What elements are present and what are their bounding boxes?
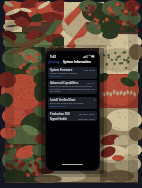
staticText: Install Verified Root xyxy=(50,98,76,102)
staticText: February 2020 xyxy=(78,117,95,120)
staticText: System Information xyxy=(63,60,91,64)
staticText: System Firmware xyxy=(50,68,73,72)
button[interactable]: Install Verified Root xyxy=(48,97,97,102)
button[interactable]: Device updated to stable on xyxy=(48,72,97,79)
staticText: Learn more xyxy=(50,75,62,78)
staticText: Settings xyxy=(50,60,61,64)
button[interactable]: Advanced Capabilities xyxy=(48,80,97,85)
button[interactable]: Production SDK xyxy=(48,111,97,116)
staticText: Production SDK xyxy=(50,112,70,116)
staticText: Advanced Capabilities xyxy=(50,81,79,85)
staticText: iOS 17 xyxy=(87,81,95,84)
staticText: Restart to apply xyxy=(50,105,66,108)
staticText: 9:41 xyxy=(50,55,57,59)
button[interactable]: Settings xyxy=(48,60,63,64)
button[interactable]: Signal Health xyxy=(48,116,97,121)
button[interactable]: Root store verified and up-to-date. xyxy=(48,102,97,109)
staticText: Signal Health xyxy=(50,117,68,121)
staticText: New Build xyxy=(83,68,95,71)
staticText: Refer to an official list of advanced se… xyxy=(50,85,95,93)
button[interactable]: Refer to an official list of advanced se… xyxy=(48,85,97,94)
staticText: Device updated to stable on xyxy=(50,72,78,75)
staticText: January 2020 xyxy=(79,112,95,115)
button[interactable]: System Firmware xyxy=(48,67,97,72)
staticText: Root store verified and up-to-date. xyxy=(50,102,84,105)
